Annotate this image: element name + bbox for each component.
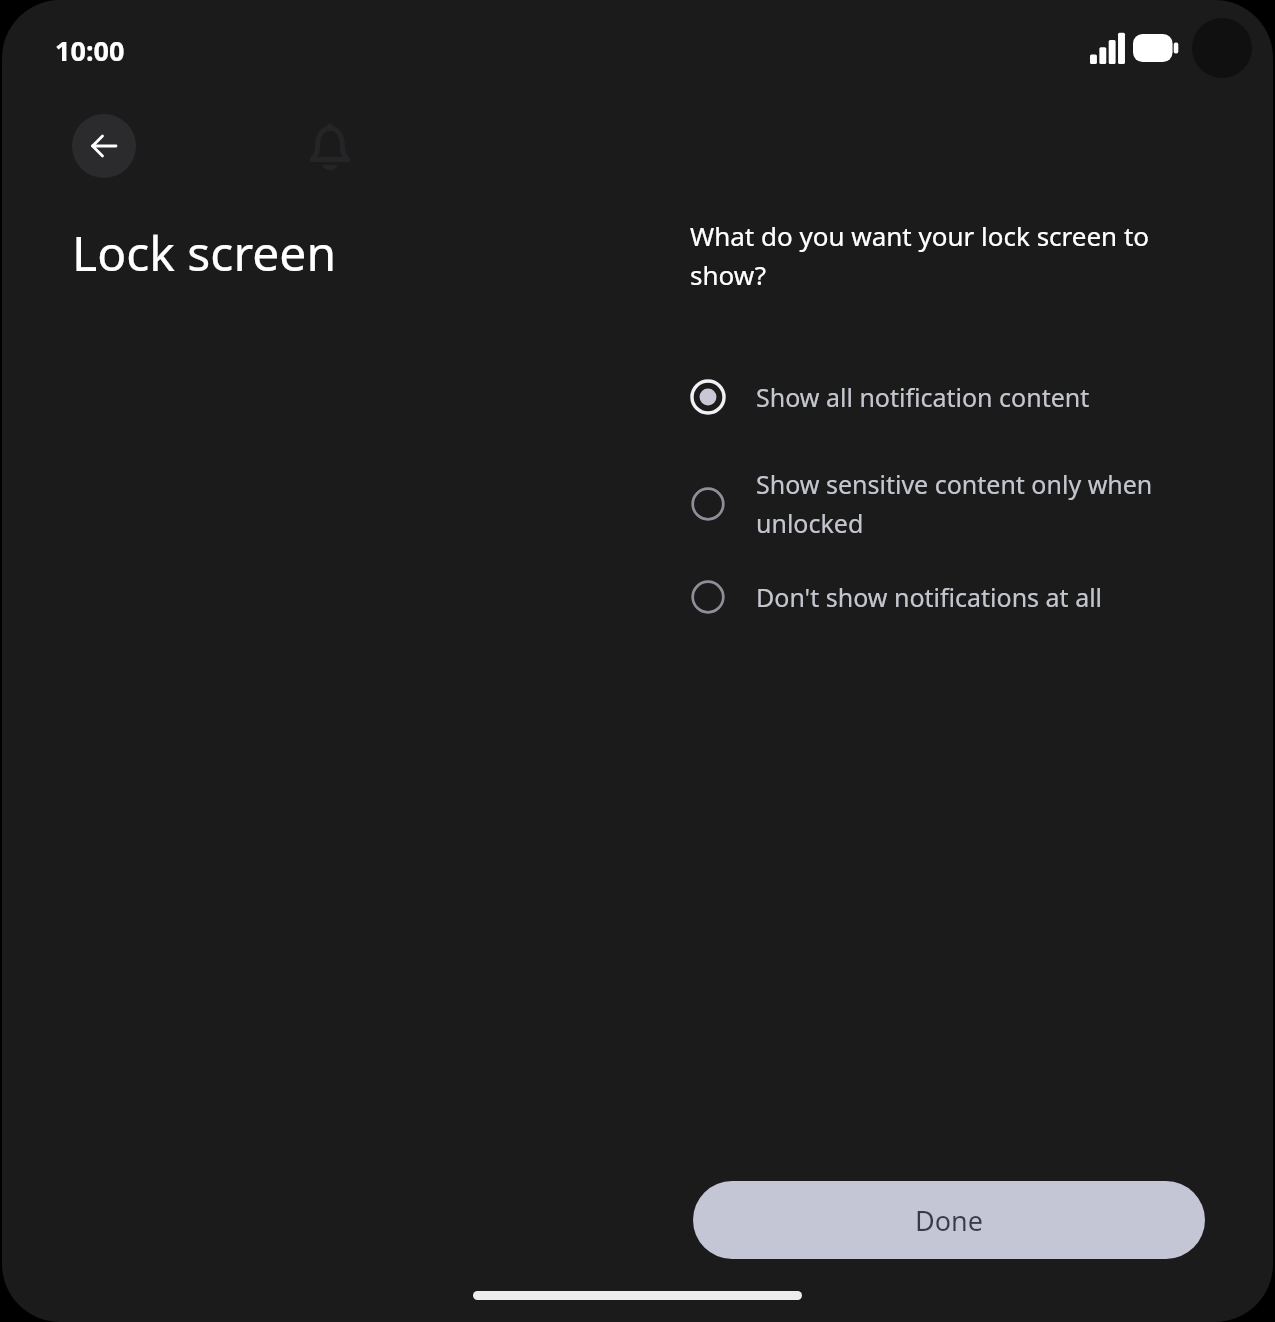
button[interactable]: Show all notification content xyxy=(690,379,1190,415)
staticText: What do you want your lock screen to sho… xyxy=(690,218,1190,293)
button[interactable]: Show sensitive content only when unlocke… xyxy=(690,467,1190,541)
button[interactable]: Back xyxy=(72,114,136,178)
staticText: Don't show notifications at all xyxy=(756,580,1190,614)
staticText: Show all notification content xyxy=(756,380,1190,414)
button[interactable]: Don't show notifications at all xyxy=(690,579,1190,615)
staticText: Show sensitive content only when unlocke… xyxy=(756,467,1190,541)
staticText: Done xyxy=(915,1202,983,1239)
staticText: Lock screen xyxy=(72,220,337,285)
button[interactable]: Done xyxy=(693,1181,1205,1259)
staticText: 10:00 xyxy=(55,32,125,69)
